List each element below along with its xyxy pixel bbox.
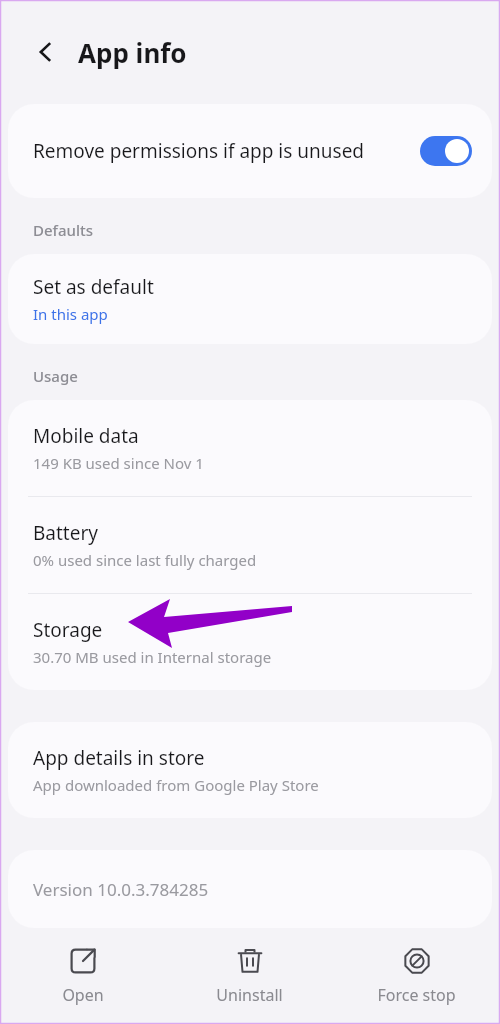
button[interactable]: Uninstall [166, 940, 333, 1012]
button[interactable]: Remove permissions if app is unused [8, 104, 492, 198]
staticText: Usage [33, 366, 78, 386]
button[interactable]: Battery [8, 497, 492, 593]
button[interactable]: Open [0, 940, 166, 1012]
staticText: 0% used since last fully charged [33, 550, 257, 570]
button[interactable]: Version 10.0.3.784285 [8, 850, 492, 928]
staticText: Version 10.0.3.784285 [33, 878, 209, 901]
staticText: Open [62, 984, 104, 1006]
staticText: 149 KB used since Nov 1 [33, 453, 204, 473]
staticText: Set as default [33, 274, 154, 300]
button[interactable]: Set as default [8, 254, 492, 344]
button[interactable]: Mobile data [8, 400, 492, 496]
staticText: Uninstall [216, 984, 283, 1006]
staticText: Force stop [377, 984, 456, 1006]
staticText: Storage [33, 617, 103, 643]
staticText: App details in store [33, 745, 205, 771]
staticText: App info [78, 35, 187, 70]
staticText: Mobile data [33, 423, 139, 449]
button[interactable]: App details in store [8, 722, 492, 818]
staticText: 30.70 MB used in Internal storage [33, 647, 272, 667]
button[interactable]: Back [24, 30, 68, 74]
button[interactable]: Force stop [333, 940, 500, 1012]
button[interactable]: Storage [8, 594, 492, 690]
staticText: Defaults [33, 220, 94, 240]
button[interactable]: Remove permissions toggle, on [420, 136, 472, 166]
staticText: App downloaded from Google Play Store [33, 775, 319, 795]
staticText: In this app [33, 304, 108, 324]
staticText: Battery [33, 520, 98, 546]
staticText: Remove permissions if app is unused [33, 138, 404, 164]
